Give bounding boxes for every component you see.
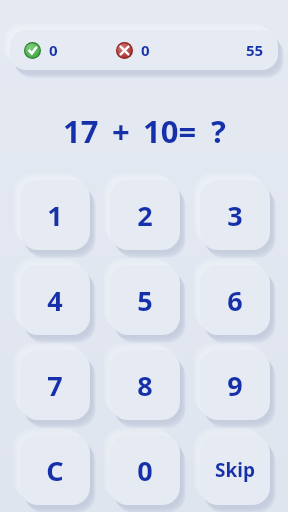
staticText: 5 <box>137 282 153 319</box>
button[interactable]: 2 <box>110 180 180 250</box>
staticText: 1 <box>47 197 63 234</box>
button[interactable]: 9 <box>200 350 270 420</box>
staticText: 9 <box>227 367 243 404</box>
button[interactable]: 0 <box>110 435 180 505</box>
staticText: C <box>46 452 64 489</box>
staticText: 17 <box>63 110 99 152</box>
button[interactable]: 7 <box>20 350 90 420</box>
button[interactable]: Skip <box>200 435 270 505</box>
staticText: 0 <box>141 40 150 60</box>
staticText: 7 <box>47 367 63 404</box>
staticText: 2 <box>137 197 153 234</box>
staticText: 0 <box>49 40 58 60</box>
staticText: + <box>112 110 130 152</box>
staticText: 4 <box>47 282 63 319</box>
button[interactable]: 1 <box>20 180 90 250</box>
staticText: 10= <box>143 110 197 152</box>
staticText: ? <box>211 110 226 152</box>
staticText: Skip <box>215 457 255 483</box>
staticText: 8 <box>137 367 153 404</box>
staticText: 6 <box>227 282 243 319</box>
button[interactable]: 8 <box>110 350 180 420</box>
button[interactable]: 4 <box>20 265 90 335</box>
button[interactable]: C <box>20 435 90 505</box>
staticText: 3 <box>227 197 243 234</box>
staticText: 55 <box>246 40 264 60</box>
button[interactable]: 6 <box>200 265 270 335</box>
button[interactable]: 0 <box>10 30 278 70</box>
button[interactable]: 3 <box>200 180 270 250</box>
staticText: 0 <box>137 452 153 489</box>
button[interactable]: 5 <box>110 265 180 335</box>
